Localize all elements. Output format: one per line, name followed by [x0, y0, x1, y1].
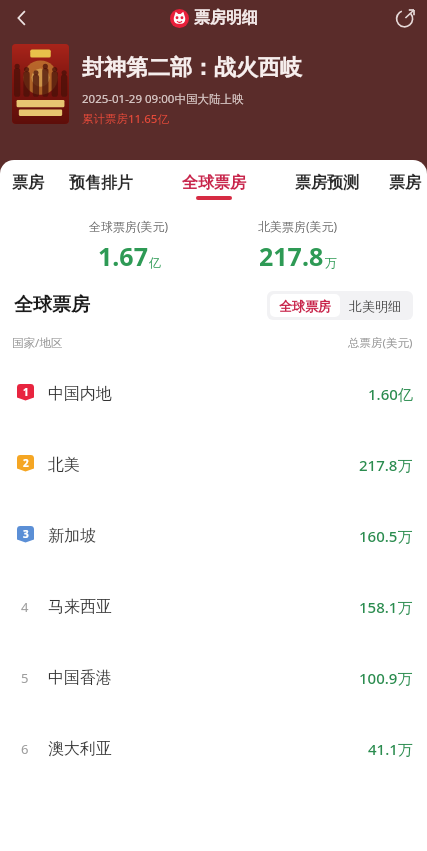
staticText: 中国内地: [48, 384, 112, 404]
button[interactable]: 封神第二部：战火西岐: [12, 44, 413, 160]
button[interactable]: 票房预测: [270, 160, 383, 206]
staticText: 100.9万: [359, 668, 413, 688]
staticText: 1: [23, 385, 29, 399]
staticText: 票房预测: [295, 173, 359, 193]
staticText: 4: [21, 598, 29, 616]
staticText: 北美明细: [349, 298, 401, 314]
button[interactable]: 全球票房: [270, 294, 340, 317]
staticText: 北美票房(美元): [258, 218, 338, 234]
staticText: 3: [23, 527, 29, 541]
staticText: 万: [325, 255, 337, 270]
button[interactable]: Share: [383, 0, 427, 36]
staticText: 票房明细: [194, 8, 258, 28]
staticText: 158.1万: [359, 597, 413, 617]
button[interactable]: 预售排片: [44, 160, 157, 206]
staticText: 1.60亿: [368, 384, 413, 404]
staticText: 中国香港: [48, 668, 112, 688]
staticText: 国家/地区: [12, 335, 63, 351]
staticText: 全球票房: [279, 298, 331, 314]
button[interactable]: 1: [0, 358, 427, 429]
staticText: 票房: [389, 173, 421, 193]
button[interactable]: 北美明细: [340, 294, 410, 317]
staticText: 全球票房(美元): [89, 218, 169, 234]
staticText: 亿: [149, 255, 161, 270]
staticText: 预售排片: [69, 173, 133, 193]
button[interactable]: 票房: [0, 160, 44, 206]
button[interactable]: 4: [0, 571, 427, 642]
button[interactable]: 全球票房: [157, 160, 270, 206]
button[interactable]: 2: [0, 429, 427, 500]
staticText: 217.8万: [359, 455, 413, 475]
staticText: 5: [21, 669, 29, 687]
staticText: 41.1万: [368, 739, 413, 759]
button[interactable]: 5: [0, 642, 427, 713]
button[interactable]: 3: [0, 500, 427, 571]
staticText: 累计票房11.65亿: [82, 111, 169, 127]
staticText: 2025-01-29 09:00中国大陆上映: [82, 91, 244, 107]
staticText: 新加坡: [48, 526, 96, 546]
button[interactable]: Back: [0, 0, 44, 36]
staticText: 160.5万: [359, 526, 413, 546]
staticText: 全球票房: [14, 293, 90, 317]
staticText: 2: [23, 456, 29, 470]
staticText: 总票房(美元): [348, 335, 413, 351]
staticText: 6: [21, 740, 29, 758]
staticText: 217.8: [259, 239, 324, 273]
staticText: 马来西亚: [48, 597, 112, 617]
button[interactable]: 6: [0, 713, 427, 784]
staticText: 全球票房: [182, 173, 246, 193]
staticText: 票房: [12, 173, 44, 193]
staticText: 北美: [48, 455, 80, 475]
staticText: 封神第二部：战火西岐: [82, 54, 302, 82]
staticText: 澳大利亚: [48, 739, 112, 759]
staticText: 1.67: [98, 239, 148, 273]
button[interactable]: 票房: [383, 160, 427, 206]
